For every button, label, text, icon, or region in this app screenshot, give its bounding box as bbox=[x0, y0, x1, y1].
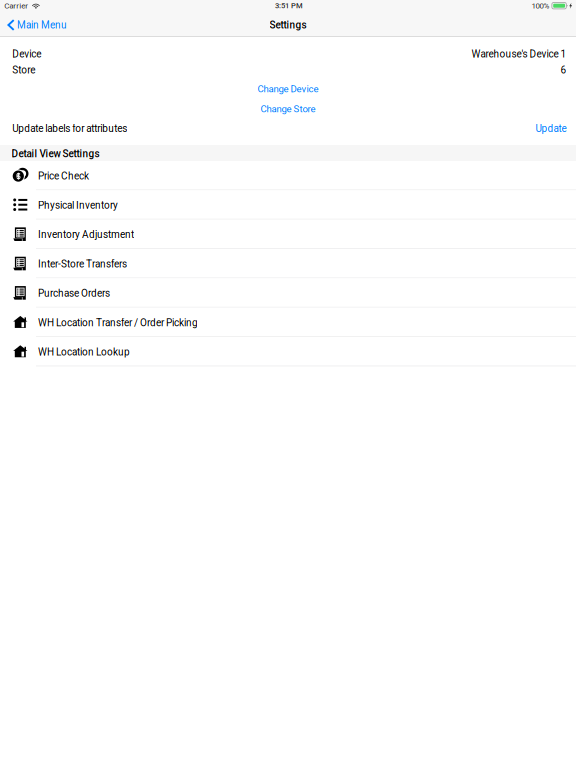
staticText: Change Store bbox=[260, 103, 315, 115]
button[interactable]: Inter-Store Transfers bbox=[0, 249, 576, 278]
staticText: Warehouse's Device 1 bbox=[471, 48, 566, 60]
staticText: Change Device bbox=[257, 83, 318, 95]
staticText: 100% bbox=[531, 1, 549, 10]
staticText: Update labels for attributes bbox=[12, 123, 127, 134]
staticText: Store bbox=[12, 64, 35, 76]
staticText: Price Check bbox=[38, 170, 89, 182]
staticText: WH Location Lookup bbox=[38, 346, 130, 358]
button[interactable]: Update bbox=[535, 123, 566, 134]
staticText: Settings bbox=[269, 19, 306, 31]
staticText: Inventory Adjustment bbox=[38, 229, 134, 240]
staticText: 3:51 PM bbox=[275, 1, 303, 10]
staticText: WH Location Transfer / Order Picking bbox=[38, 317, 198, 329]
button[interactable]: Price Check bbox=[0, 161, 576, 190]
button[interactable]: Main Menu bbox=[0, 14, 75, 35]
button[interactable]: WH Location Transfer / Order Picking bbox=[0, 308, 576, 337]
staticText: Update bbox=[535, 123, 566, 134]
staticText: Carrier bbox=[4, 1, 28, 10]
button[interactable]: WH Location Lookup bbox=[0, 337, 576, 366]
staticText: Inter-Store Transfers bbox=[38, 258, 127, 270]
staticText: Purchase Orders bbox=[38, 287, 110, 299]
button[interactable]: Inventory Adjustment bbox=[0, 220, 576, 249]
staticText: Device bbox=[12, 48, 41, 60]
staticText: 6 bbox=[560, 64, 566, 76]
button[interactable]: Purchase Orders bbox=[0, 278, 576, 308]
staticText: Main Menu bbox=[17, 19, 67, 31]
button[interactable]: Change Store bbox=[0, 101, 576, 117]
staticText: Detail View Settings bbox=[11, 148, 99, 160]
staticText: Physical Inventory bbox=[38, 199, 118, 211]
button[interactable]: Physical Inventory bbox=[0, 190, 576, 220]
button[interactable]: Change Device bbox=[0, 81, 576, 97]
